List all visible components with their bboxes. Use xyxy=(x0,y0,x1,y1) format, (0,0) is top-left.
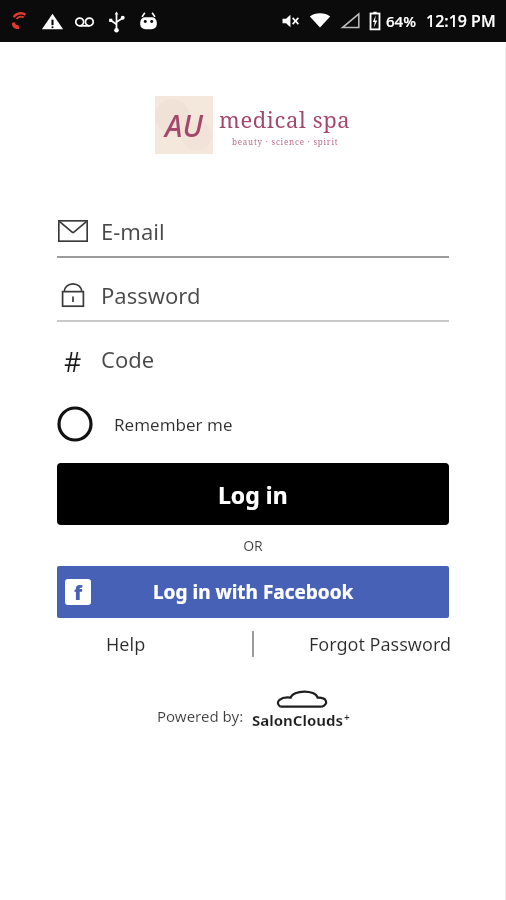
staticText: AU xyxy=(165,105,203,146)
staticText: + xyxy=(344,710,350,724)
staticText: Forgot Password xyxy=(309,632,452,657)
button[interactable]: Help xyxy=(0,627,252,661)
staticText: Code xyxy=(101,344,155,374)
staticText: Log in xyxy=(218,479,288,510)
staticText: Help xyxy=(106,632,146,657)
staticText: beauty · science · spirit xyxy=(232,136,339,147)
staticText: Powered by: xyxy=(157,706,244,726)
staticText: f xyxy=(74,579,83,605)
button[interactable]: Forgot Password xyxy=(254,627,506,661)
button[interactable]: # xyxy=(57,334,449,384)
button[interactable]: Log in with Facebook xyxy=(57,566,449,618)
button[interactable]: Password xyxy=(57,270,449,320)
staticText: OR xyxy=(0,536,506,555)
staticText: Password xyxy=(101,280,201,310)
staticText: Log in with Facebook xyxy=(153,579,354,605)
button[interactable]: Remember me xyxy=(57,402,449,446)
staticText: 12:19 PM xyxy=(426,10,496,32)
button[interactable]: Log in xyxy=(57,463,449,525)
staticText: medical spa xyxy=(219,104,351,134)
staticText: Remember me xyxy=(114,413,233,436)
staticText: # xyxy=(64,343,82,375)
staticText: 64% xyxy=(386,11,416,31)
staticText: SalonClouds xyxy=(252,710,344,730)
button[interactable]: E-mail xyxy=(57,206,449,256)
staticText: E-mail xyxy=(101,216,165,246)
